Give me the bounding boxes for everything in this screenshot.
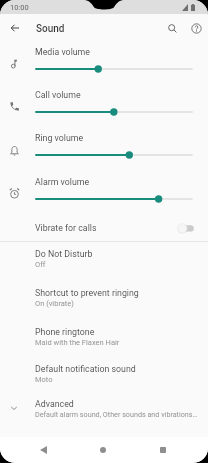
- button[interactable]: Default notification sound: [0, 363, 208, 401]
- staticText: Sound: [36, 23, 65, 35]
- staticText: Call volume: [35, 90, 81, 100]
- button[interactable]: Phone ringtone: [0, 326, 208, 364]
- button[interactable]: Media volume: [0, 47, 208, 90]
- staticText: Ring volume: [35, 133, 84, 143]
- button[interactable]: Search: [161, 17, 183, 39]
- staticText: Phone ringtone: [35, 327, 95, 337]
- button[interactable]: Ring volume: [0, 133, 208, 176]
- button[interactable]: Advanced: [0, 398, 208, 436]
- button[interactable]: Do Not Disturb: [0, 248, 208, 286]
- button[interactable]: Home: [92, 439, 114, 461]
- staticText: Default alarm sound, Other sounds and vi…: [35, 410, 198, 418]
- button[interactable]: Navigate up: [4, 17, 26, 39]
- staticText: Default notification sound: [35, 364, 136, 374]
- button[interactable]: Alarm volume: [0, 177, 208, 220]
- staticText: 10:00: [10, 3, 29, 12]
- button[interactable]: Shortcut to prevent ringing: [0, 287, 208, 325]
- staticText: Vibrate for calls: [35, 223, 97, 233]
- staticText: Media volume: [35, 47, 90, 57]
- staticText: Maid with the Flaxen Hair: [35, 338, 120, 347]
- staticText: On (vibrate): [35, 299, 74, 308]
- button[interactable]: Vibrate for calls: [0, 214, 208, 242]
- staticText: Off: [35, 260, 46, 269]
- staticText: Shortcut to prevent ringing: [35, 288, 139, 298]
- button[interactable]: Call volume: [0, 90, 208, 133]
- staticText: Alarm volume: [35, 177, 90, 187]
- button[interactable]: Recent apps: [152, 439, 174, 461]
- button[interactable]: Back: [32, 439, 54, 461]
- staticText: Do Not Disturb: [35, 249, 93, 259]
- button[interactable]: Help: [185, 17, 207, 39]
- staticText: Moto: [35, 375, 53, 384]
- staticText: Advanced: [35, 399, 74, 409]
